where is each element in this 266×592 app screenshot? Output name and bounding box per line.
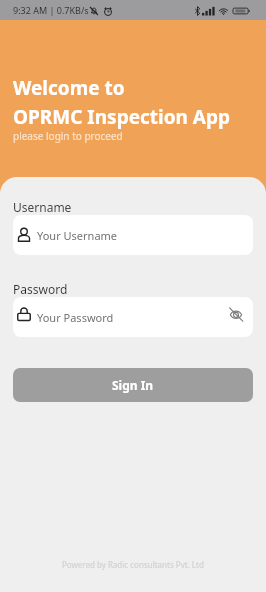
button[interactable]: Your Username: [13, 215, 253, 255]
staticText: Your Username: [37, 228, 118, 243]
staticText: OPRMC Inspection App: [13, 104, 231, 130]
button[interactable]: Your Password: [13, 297, 253, 337]
staticText: Username: [13, 199, 72, 215]
staticText: Password: [13, 281, 68, 297]
staticText: please login to proceed: [13, 129, 123, 143]
staticText: Powered by Radic consultants Pvt. Ltd: [62, 559, 204, 570]
button[interactable]: Show password: [222, 302, 252, 332]
staticText: Welcome to: [13, 75, 125, 101]
staticText: 9:32 AM | 0.7KB/s: [13, 4, 89, 16]
staticText: Your Password: [37, 310, 114, 325]
staticText: Sign In: [112, 377, 154, 393]
button[interactable]: Sign In: [13, 368, 253, 402]
